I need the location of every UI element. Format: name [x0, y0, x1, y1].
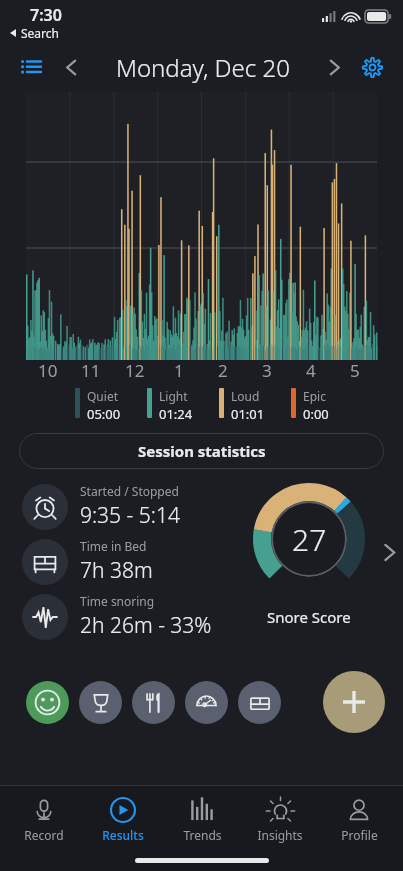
- staticText: 2: [218, 359, 228, 382]
- button[interactable]: Insights: [245, 794, 315, 845]
- staticText: Started / Stopped: [80, 483, 179, 499]
- button[interactable]: Sessions list: [14, 50, 48, 84]
- button[interactable]: Settings: [355, 50, 389, 84]
- staticText: 4: [306, 359, 316, 382]
- button[interactable]: Tag: [79, 681, 122, 724]
- staticText: 9:35 - 5:14: [80, 501, 180, 530]
- button[interactable]: Started / Stopped: [22, 483, 215, 530]
- staticText: Monday, Dec 20: [116, 51, 290, 84]
- staticText: Profile: [341, 827, 378, 843]
- staticText: 7:30: [30, 4, 62, 26]
- button[interactable]: Record: [9, 794, 79, 845]
- button[interactable]: Results: [88, 794, 158, 845]
- button[interactable]: Time snoring: [22, 593, 215, 640]
- button[interactable]: Time in Bed: [22, 538, 215, 585]
- staticText: 3: [262, 359, 272, 382]
- staticText: 01:24: [159, 405, 193, 423]
- staticText: 5: [350, 359, 360, 382]
- button[interactable]: Next day: [317, 50, 351, 84]
- button[interactable]: Tag: [132, 681, 175, 724]
- staticText: 1: [174, 359, 184, 382]
- staticText: 2h 26m - 33%: [80, 611, 212, 640]
- staticText: Record: [24, 827, 64, 843]
- staticText: 01:01: [231, 405, 265, 423]
- staticText: Epic: [303, 388, 326, 404]
- staticText: Insights: [257, 827, 303, 843]
- staticText: Snore Score: [267, 607, 351, 627]
- staticText: Results: [102, 827, 144, 843]
- staticText: Search: [21, 25, 59, 41]
- button[interactable]: Trends: [167, 794, 237, 845]
- staticText: Trends: [183, 827, 222, 843]
- staticText: 0:00: [303, 405, 329, 423]
- staticText: Quiet: [87, 388, 118, 404]
- button[interactable]: 27: [215, 477, 403, 667]
- staticText: 7h 38m: [80, 556, 153, 585]
- staticText: 27: [292, 519, 327, 560]
- button[interactable]: Add tag: [323, 671, 385, 733]
- staticText: 10: [38, 359, 58, 382]
- button[interactable]: Session statistics: [19, 433, 384, 469]
- button[interactable]: Previous day: [54, 50, 88, 84]
- button[interactable]: Tag: [238, 681, 281, 724]
- staticText: 12: [125, 359, 145, 382]
- staticText: Time snoring: [80, 593, 155, 609]
- staticText: 11: [81, 359, 101, 382]
- staticText: Time in Bed: [80, 538, 147, 554]
- staticText: 05:00: [87, 405, 121, 423]
- staticText: Light: [159, 388, 188, 404]
- button[interactable]: Tag: [26, 681, 69, 724]
- staticText: Session statistics: [138, 441, 266, 461]
- button[interactable]: Tag: [185, 681, 228, 724]
- button[interactable]: Profile: [324, 794, 394, 845]
- staticText: Loud: [231, 388, 260, 404]
